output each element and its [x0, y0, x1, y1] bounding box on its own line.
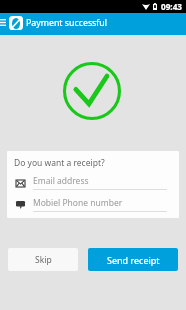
button[interactable]: Send receipt — [88, 248, 178, 271]
staticText: Email address — [33, 175, 89, 187]
button[interactable]: Skip — [8, 248, 78, 271]
button[interactable]: App logo — [9, 16, 23, 30]
button[interactable]: Email address — [14, 175, 173, 190]
staticText: Send receipt — [107, 254, 160, 266]
staticText: Payment successful — [26, 17, 108, 29]
staticText: 09:43 — [161, 1, 183, 12]
staticText: Skip — [35, 254, 52, 266]
staticText: Do you want a receipt? — [14, 157, 105, 169]
button[interactable]: Menu — [0, 18, 6, 26]
staticText: Mobiel Phone number — [33, 197, 123, 209]
button[interactable]: Mobiel Phone number — [14, 197, 173, 212]
